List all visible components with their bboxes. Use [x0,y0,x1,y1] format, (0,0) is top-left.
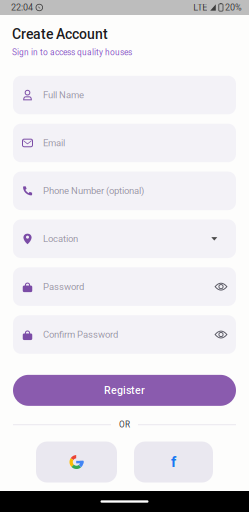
staticText: Create Account [12,26,108,42]
button[interactable]: Location [13,219,236,258]
staticText: Password [43,281,84,292]
staticText: LTE [193,2,207,13]
button[interactable]: Confirm Password [13,315,236,354]
staticText: Confirm Password [43,329,118,340]
staticText: OR [119,420,130,429]
staticText: Full Name [43,89,84,101]
staticText: Sign in to access quality houses [12,47,132,57]
button[interactable]: Sign up with Facebook [134,441,213,482]
button[interactable]: Phone Number (optional) [13,171,236,210]
button[interactable]: Register [13,375,236,406]
button[interactable]: Password [13,267,236,306]
staticText: 20% [225,2,242,13]
button[interactable]: Sign up with Google [36,441,117,482]
staticText: Location [43,233,78,244]
staticText: f [171,453,176,471]
staticText: Phone Number (optional) [43,185,144,196]
staticText: Register [104,384,145,397]
staticText: 22:04 [11,2,33,13]
button[interactable]: Full Name [13,76,236,114]
staticText: Email [43,137,65,148]
button[interactable]: Email [13,124,236,162]
